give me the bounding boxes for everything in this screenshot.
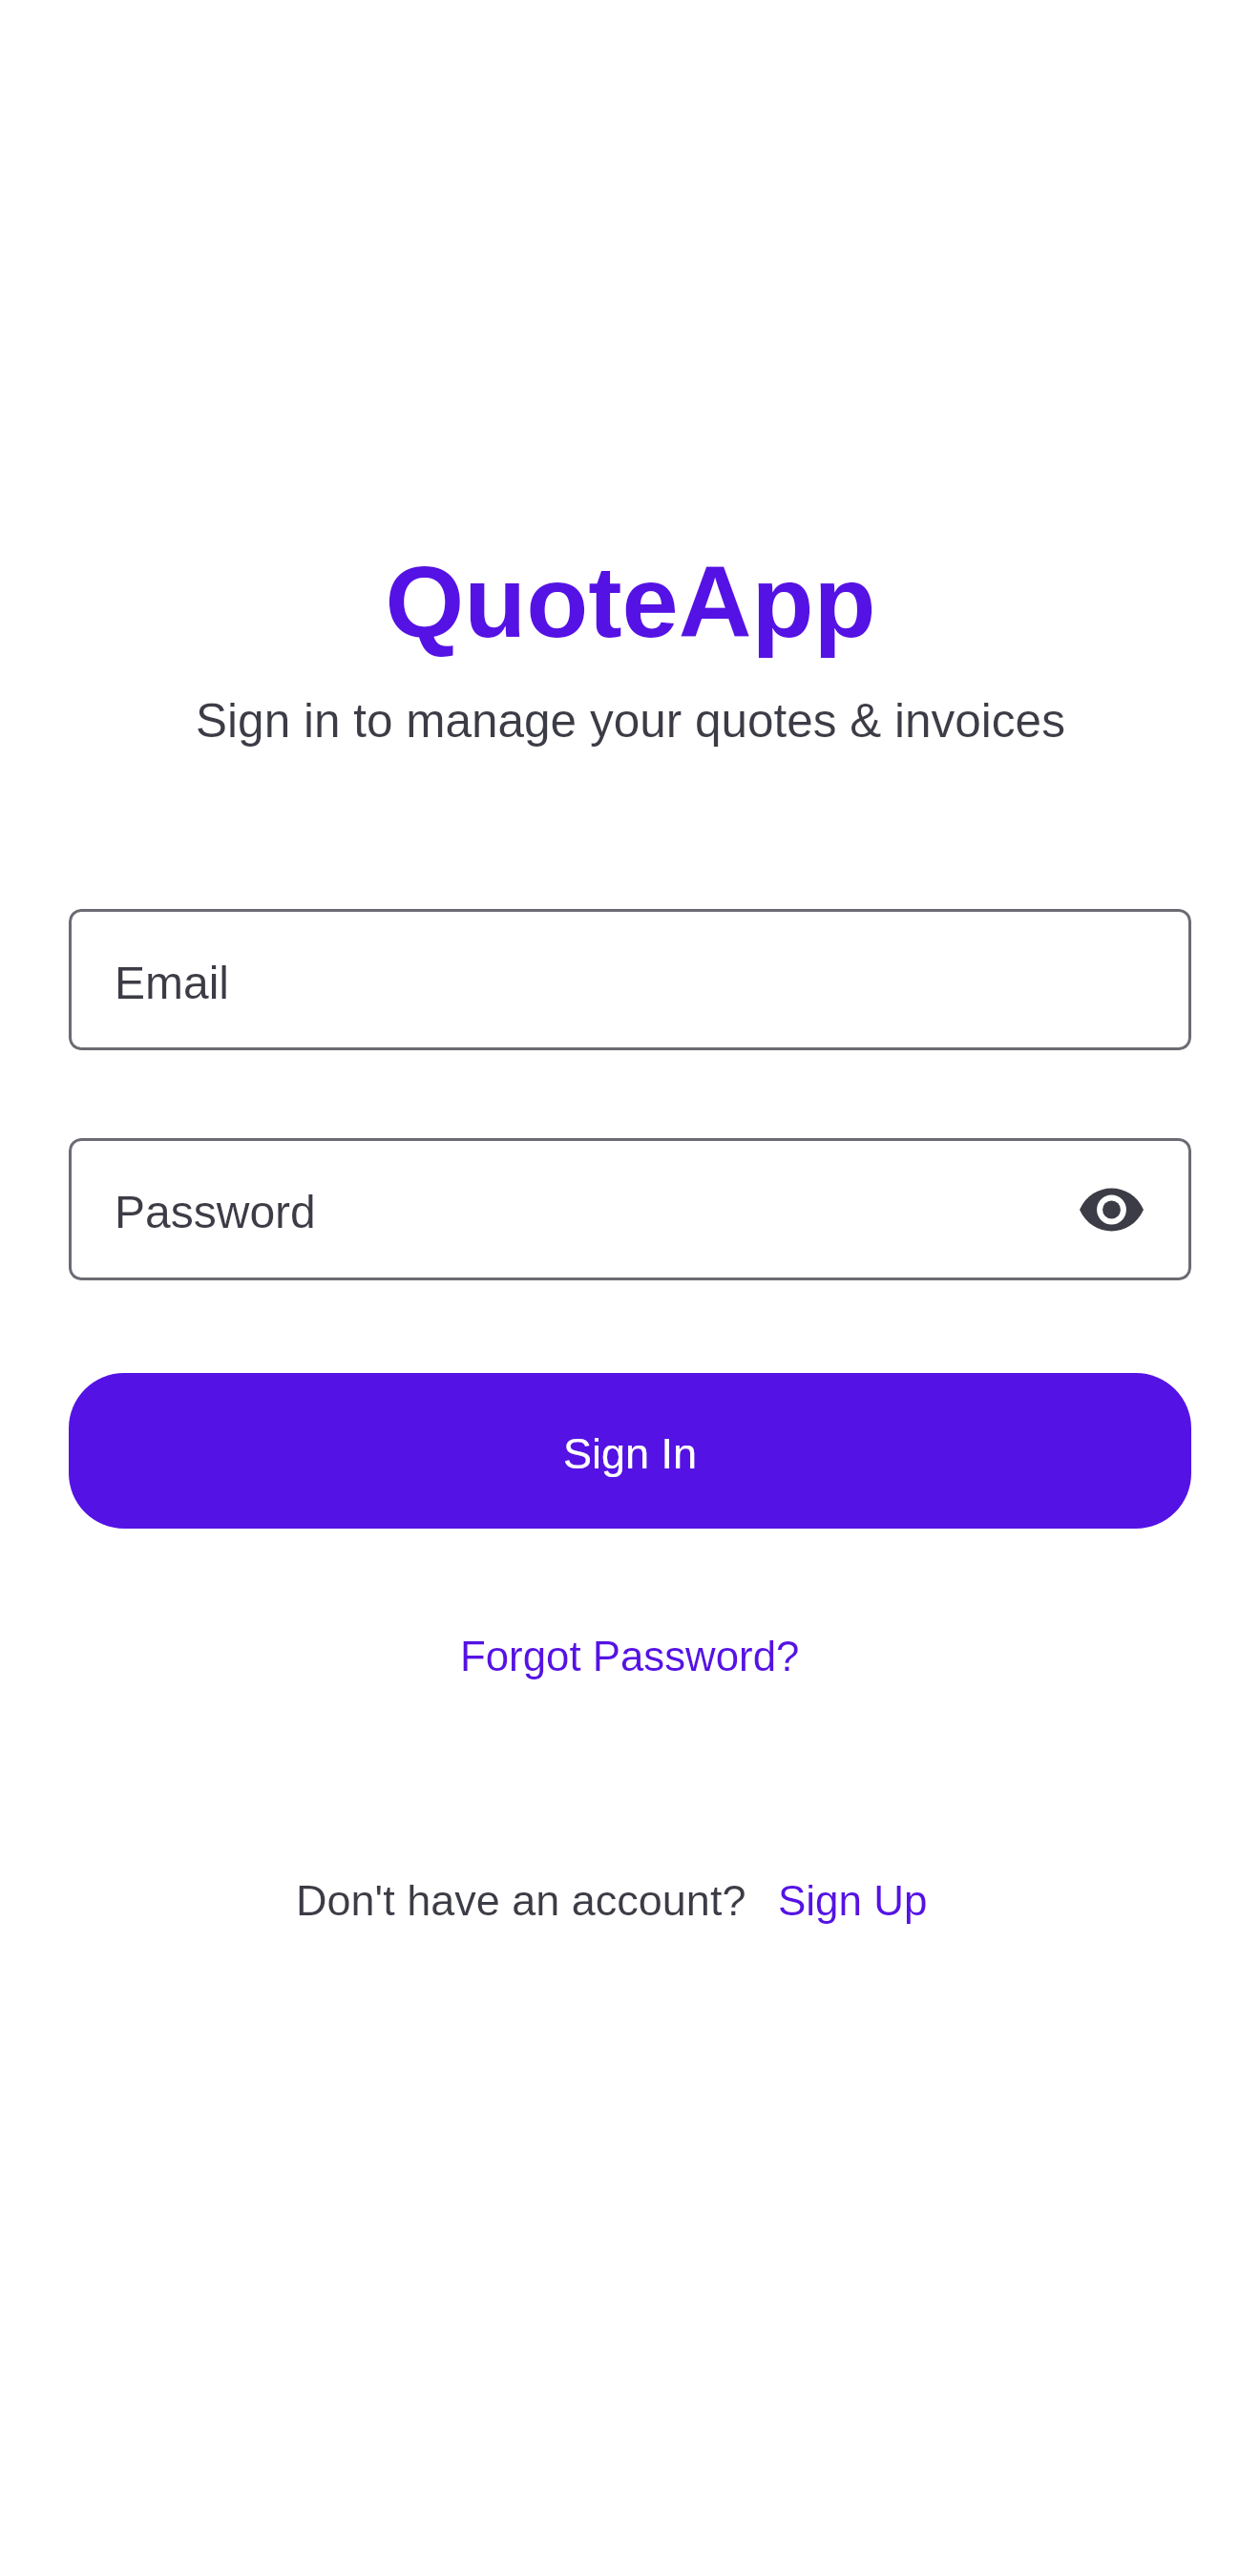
- staticText: Sign In: [563, 1429, 698, 1477]
- staticText: Sign Up: [778, 1877, 928, 1924]
- staticText: Don't have an account?: [296, 1876, 746, 1924]
- button[interactable]: Show password: [1057, 1163, 1166, 1256]
- staticText: Email: [115, 958, 230, 1009]
- button[interactable]: Email: [69, 909, 1191, 1050]
- button[interactable]: Password: [69, 1138, 1191, 1280]
- staticText: Forgot Password?: [460, 1633, 800, 1679]
- button[interactable]: Sign Up: [755, 1858, 951, 1943]
- staticText: Sign in to manage your quotes & invoices: [196, 694, 1065, 747]
- button[interactable]: Forgot Password?: [437, 1610, 823, 1702]
- staticText: Password: [115, 1187, 316, 1238]
- staticText: QuoteApp: [385, 545, 876, 659]
- button[interactable]: Sign In: [69, 1373, 1191, 1529]
